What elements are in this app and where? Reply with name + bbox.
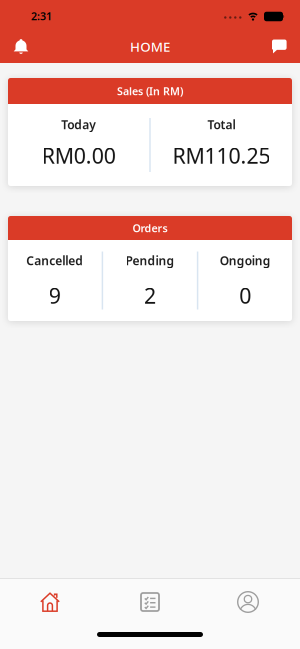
staticText: HOME (130, 38, 170, 55)
button[interactable]: Profile (200, 579, 300, 625)
staticText: Sales (In RM) (117, 84, 183, 98)
staticText: 9 (49, 281, 61, 310)
button[interactable]: Notifications (0, 30, 29, 63)
staticText: Total (207, 116, 235, 132)
staticText: 2:31 (31, 9, 52, 23)
button[interactable]: Messages (272, 31, 300, 61)
button[interactable]: Orders (100, 579, 200, 625)
staticText: RM110.25 (172, 141, 270, 170)
staticText: 0 (239, 281, 251, 310)
staticText: Cancelled (26, 252, 83, 268)
staticText: RM0.00 (42, 141, 116, 170)
button[interactable]: Home (0, 579, 100, 625)
staticText: 2 (144, 281, 156, 310)
staticText: Pending (125, 252, 174, 268)
staticText: Today (61, 116, 96, 132)
staticText: Ongoing (220, 252, 271, 268)
staticText: Orders (132, 221, 167, 235)
